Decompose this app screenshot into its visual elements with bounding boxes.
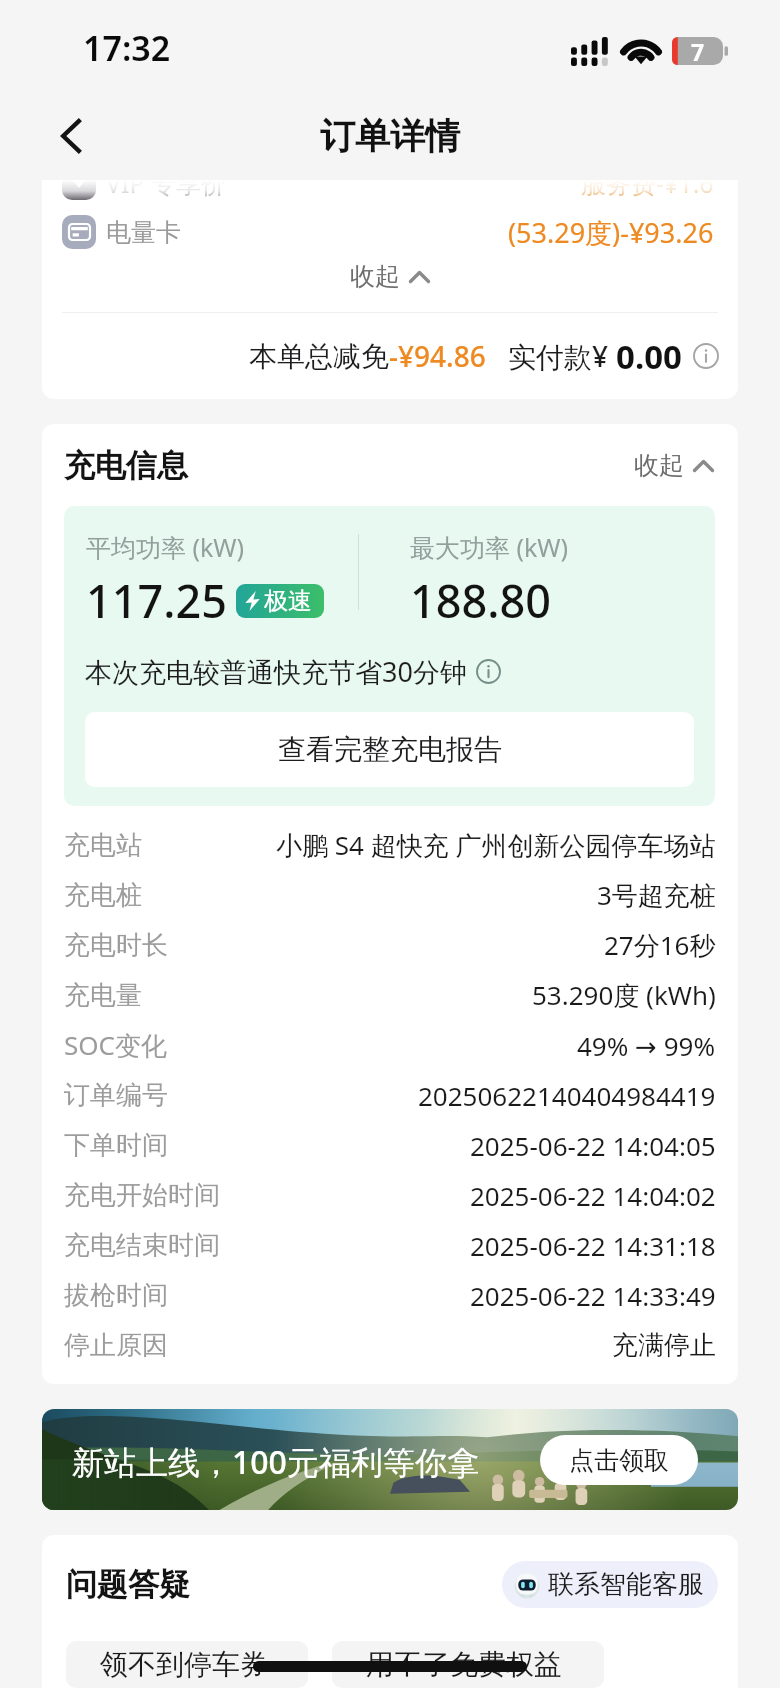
staticText: 订单编号 [64, 1079, 168, 1112]
staticText: 充电开始时间 [64, 1179, 220, 1212]
staticText: -¥94.86 [389, 337, 486, 375]
staticText: 小鹏 S4 超快充 广州创新公园停车场站 [276, 827, 716, 863]
staticText: 3号超充桩 [597, 877, 716, 913]
staticText: 充电时长 [64, 929, 168, 962]
staticText: 实付款¥ [508, 337, 609, 375]
staticText: 充电量 [64, 979, 142, 1012]
staticText: 2025-06-22 14:33:49 [470, 1278, 716, 1313]
staticText: 查看完整充电报告 [278, 732, 502, 767]
staticText: 2025-06-22 14:04:05 [470, 1128, 716, 1163]
staticText: 用不了免费权益 [366, 1647, 562, 1682]
staticText: 订单详情 [320, 114, 460, 158]
staticText: 平均功率 (kW) [86, 530, 245, 564]
staticText: 117.25 [86, 570, 227, 631]
staticText: 问题答疑 [66, 1565, 190, 1604]
button[interactable]: 领不到停车券 [66, 1641, 308, 1688]
staticText: 最大功率 (kW) [410, 530, 569, 564]
staticText: 点击领取 [569, 1445, 669, 1476]
staticText: 7 [691, 36, 705, 64]
staticText: VIP 专享价 [106, 180, 227, 200]
staticText: 本次充电较普通快充节省30分钟 [85, 653, 467, 690]
button[interactable]: Back [50, 115, 92, 157]
button[interactable]: 用不了免费权益 [332, 1641, 604, 1688]
staticText: 17:32 [83, 25, 171, 71]
staticText: 188.80 [410, 570, 551, 631]
staticText: 27分16秒 [604, 927, 716, 963]
staticText: 53.290度 (kWh) [532, 977, 716, 1013]
staticText: (53.29度)-¥93.26 [508, 214, 714, 251]
staticText: 电量卡 [106, 217, 181, 248]
staticText: 本单总减免 [249, 339, 389, 374]
staticText: 收起 [634, 450, 684, 481]
staticText: 拔枪时间 [64, 1279, 168, 1312]
staticText: 2025-06-22 14:04:02 [470, 1178, 716, 1213]
staticText: 领不到停车券 [100, 1647, 268, 1682]
staticText: 联系智能客服 [548, 1568, 704, 1601]
button[interactable]: 查看完整充电报告 [85, 712, 694, 787]
staticText: 新站上线，100元福利等你拿 [72, 1440, 479, 1484]
button[interactable]: 收起 [634, 450, 714, 481]
staticText: 充电结束时间 [64, 1229, 220, 1262]
button[interactable]: 收起 [350, 261, 430, 292]
staticText: 充电站 [64, 829, 142, 862]
staticText: 20250622140404984419 [418, 1078, 716, 1113]
staticText: 49% → 99% [577, 1028, 716, 1063]
staticText: 极速 [264, 586, 312, 616]
staticText: 服务费-¥1.6 [581, 180, 714, 200]
button[interactable]: 点击领取 [540, 1435, 698, 1485]
staticText: SOC变化 [64, 1027, 168, 1063]
staticText: 停止原因 [64, 1329, 168, 1362]
button[interactable]: 新站上线，100元福利等你拿 [42, 1409, 738, 1510]
staticText: 2025-06-22 14:31:18 [470, 1228, 716, 1263]
staticText: 0.00 [616, 334, 682, 379]
staticText: 收起 [350, 261, 400, 292]
staticText: 充电信息 [64, 446, 188, 485]
staticText: 下单时间 [64, 1129, 168, 1162]
staticText: 充满停止 [612, 1329, 716, 1362]
staticText: 充电桩 [64, 879, 142, 912]
button[interactable]: 联系智能客服 [502, 1561, 718, 1608]
